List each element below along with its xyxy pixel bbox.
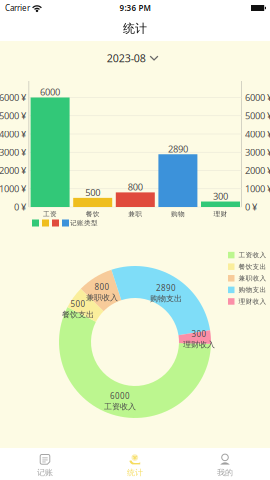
button[interactable]: 统计 [90,451,180,480]
staticText: 800 [94,281,109,292]
staticText: 4000 ¥ [0,128,26,140]
staticText: 3000 ¥ [0,146,26,158]
button[interactable]: 2023-08 [90,41,180,71]
staticText: 兼职收入 [238,274,266,282]
staticText: 2023-08 [107,51,146,65]
staticText: Carrier [5,3,30,13]
staticText: 4000 ¥ [245,128,270,140]
button[interactable]: 记账 [0,451,90,480]
staticText: 工资收入 [238,251,266,259]
staticText: 300 [191,328,206,339]
staticText: 兼职收入 [86,293,118,302]
button[interactable]: 我的 [180,451,270,480]
staticText: 记账类型 [70,219,98,227]
staticText: 500 [85,186,100,199]
staticText: 购物支出 [238,286,266,294]
staticText: 5000 ¥ [245,110,270,122]
staticText: 6000 [110,390,130,401]
staticText: 0 ¥ [14,201,26,213]
staticText: 统计 [123,21,147,36]
staticText: 理财收入 [183,340,215,349]
staticText: 购物支出 [150,294,182,303]
staticText: 3000 ¥ [245,146,270,158]
staticText: 2000 ¥ [245,164,270,177]
staticText: 1000 ¥ [245,183,270,195]
staticText: 理财 [213,210,227,218]
staticText: 2890 [168,143,188,155]
staticText: 1000 ¥ [0,183,26,195]
staticText: 500 [70,298,85,309]
staticText: 兼职 [128,210,142,218]
staticText: 300 [213,190,228,202]
staticText: 0 ¥ [245,201,257,213]
staticText: 购物 [171,210,185,218]
staticText: 餐饮 [86,210,100,218]
staticText: 工资收入 [104,402,136,411]
staticText: 餐饮支出 [238,263,266,271]
staticText: 统计 [127,468,143,477]
staticText: 800 [128,181,143,193]
staticText: 5000 ¥ [0,110,26,122]
staticText: 6000 ¥ [0,91,26,104]
staticText: 记账 [37,468,53,477]
staticText: 9:36 PM [119,3,150,13]
staticText: 理财收入 [238,297,266,306]
staticText: 2000 ¥ [0,164,26,177]
staticText: 餐饮支出 [62,310,94,319]
staticText: 2890 [156,282,176,293]
staticText: 6000 ¥ [245,91,270,104]
staticText: 工资 [43,210,57,218]
staticText: 我的 [217,468,233,477]
staticText: 6000 [40,86,60,98]
